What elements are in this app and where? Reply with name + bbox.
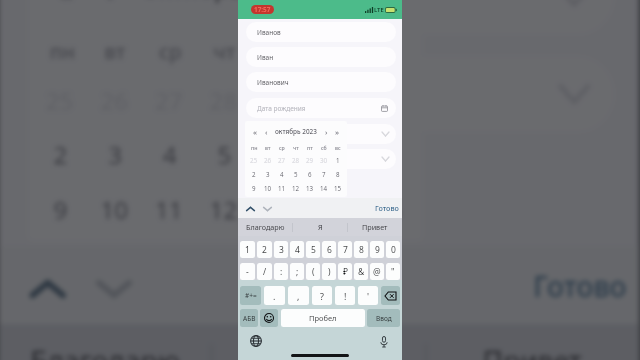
button[interactable]: 5 — [198, 125, 252, 180]
button[interactable]: Благодарю — [0, 324, 210, 360]
button[interactable]: . — [264, 286, 285, 305]
button[interactable]: Следующий год — [333, 126, 341, 138]
button[interactable]: 14 — [317, 181, 331, 195]
button[interactable]: 9 — [247, 181, 261, 195]
button[interactable]: 4 — [290, 241, 304, 258]
button[interactable]: Иванович — [246, 72, 396, 92]
button[interactable]: ' — [358, 286, 378, 305]
button[interactable]: 1 — [240, 241, 255, 258]
button[interactable]: Голосовой ввод — [375, 332, 393, 350]
button[interactable]: 6 — [252, 125, 307, 180]
button[interactable]: Следующий год — [369, 0, 401, 12]
button[interactable]: 6 — [303, 167, 317, 181]
button[interactable]: Иван — [246, 47, 396, 67]
button[interactable]: 4 — [143, 125, 198, 180]
button[interactable]: 7 — [307, 125, 362, 180]
button[interactable]: Открыть список — [30, 55, 615, 133]
button[interactable]: Следующее поле — [81, 254, 147, 320]
button[interactable]: 25 — [247, 153, 261, 167]
button[interactable]: Привет — [348, 218, 402, 236]
button[interactable]: 10 — [89, 180, 143, 234]
button[interactable]: 9 — [34, 180, 89, 234]
button[interactable]: 4 — [275, 167, 289, 181]
button[interactable]: 9 — [370, 241, 384, 258]
button[interactable]: 10 — [261, 181, 275, 195]
button[interactable]: 1 — [362, 71, 416, 125]
button[interactable]: 13 — [252, 180, 307, 234]
button[interactable]: 15 — [362, 180, 416, 234]
button[interactable]: Привет — [428, 324, 639, 360]
button[interactable]: 2 — [257, 241, 272, 258]
button[interactable]: 2 — [34, 125, 89, 180]
button[interactable]: ) — [322, 263, 336, 280]
button[interactable]: 29 — [252, 71, 307, 125]
button[interactable]: ! — [335, 286, 355, 305]
button[interactable]: : — [274, 263, 288, 280]
button[interactable]: 12 — [198, 180, 252, 234]
button[interactable]: 11 — [275, 181, 289, 195]
button[interactable]: 3 — [274, 241, 288, 258]
button[interactable]: Выбрать дату — [378, 102, 390, 114]
button[interactable]: 13 — [303, 181, 317, 195]
button[interactable]: - — [240, 263, 255, 280]
button[interactable]: 0 — [386, 241, 400, 258]
button[interactable]: 14 — [307, 180, 362, 234]
button[interactable]: Сменить язык — [247, 332, 265, 350]
button[interactable]: Благодарю — [238, 218, 292, 236]
button[interactable]: Я — [213, 324, 424, 360]
button[interactable]: 3 — [261, 167, 275, 181]
button[interactable]: Предыдущее поле — [242, 200, 259, 217]
button[interactable]: 28 — [289, 153, 303, 167]
button[interactable]: 6 — [322, 241, 336, 258]
button[interactable]: Дата рождения — [246, 98, 396, 118]
button[interactable]: 11 — [143, 180, 198, 234]
button[interactable]: ( — [306, 263, 320, 280]
button[interactable]: ? — [312, 286, 332, 305]
button[interactable]: Пробел — [281, 309, 365, 327]
button[interactable]: & — [354, 263, 368, 280]
button[interactable]: ₽ — [338, 263, 352, 280]
button[interactable]: 8 — [354, 241, 368, 258]
button[interactable]: 28 — [198, 71, 252, 125]
button[interactable]: 5 — [289, 167, 303, 181]
button[interactable]: Эмодзи — [260, 309, 278, 327]
button[interactable]: Открыть список — [30, 0, 615, 36]
button[interactable]: Предыдущее поле — [15, 254, 81, 320]
button[interactable]: 5 — [306, 241, 320, 258]
button[interactable]: 8 — [331, 167, 345, 181]
button[interactable]: Предыдущий месяц — [262, 126, 270, 138]
button[interactable]: Предыдущий год — [251, 126, 259, 138]
button[interactable]: 15 — [331, 181, 345, 195]
button[interactable]: 7 — [317, 167, 331, 181]
button[interactable]: Я — [293, 218, 347, 236]
button[interactable]: #+= — [240, 286, 261, 305]
button[interactable]: Удалить — [381, 286, 400, 305]
button[interactable]: Следующее поле — [259, 200, 276, 217]
button[interactable]: Следующий месяц — [322, 126, 330, 138]
button[interactable]: 27 — [275, 153, 289, 167]
button[interactable]: 3 — [89, 125, 143, 180]
button[interactable]: / — [257, 263, 272, 280]
button[interactable]: 8 — [362, 125, 416, 180]
button[interactable]: Готово — [372, 201, 402, 215]
button[interactable]: 26 — [261, 153, 275, 167]
button[interactable]: " — [386, 263, 400, 280]
button[interactable]: Открыть список — [246, 149, 396, 169]
button[interactable]: Готово — [522, 258, 639, 312]
button[interactable]: , — [288, 286, 309, 305]
button[interactable]: 2 — [247, 167, 261, 181]
button[interactable]: 1 — [331, 153, 345, 167]
button[interactable]: 29 — [303, 153, 317, 167]
button[interactable]: Ввод — [367, 309, 400, 327]
button[interactable]: АБВ — [240, 309, 258, 327]
button[interactable]: ; — [290, 263, 304, 280]
button[interactable]: Открыть список — [246, 124, 396, 144]
button[interactable]: 30 — [317, 153, 331, 167]
